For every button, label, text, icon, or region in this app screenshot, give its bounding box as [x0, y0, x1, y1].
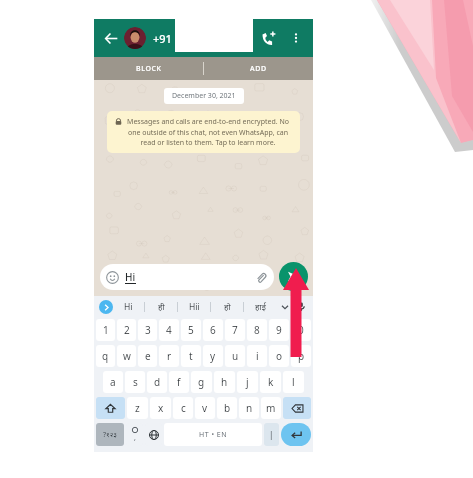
- button[interactable]: ADD: [204, 57, 313, 80]
- button[interactable]: Backspace: [283, 397, 311, 419]
- button[interactable]: e: [138, 345, 157, 367]
- button[interactable]: ?१२३: [96, 423, 124, 446]
- button[interactable]: Voice input: [294, 296, 308, 317]
- button[interactable]: 4: [159, 319, 179, 341]
- staticText: x: [158, 401, 164, 415]
- button[interactable]: s: [125, 371, 145, 393]
- button[interactable]: k: [260, 371, 281, 393]
- button[interactable]: a: [103, 371, 123, 393]
- button[interactable]: Change language: [145, 423, 162, 446]
- staticText: k: [268, 375, 274, 389]
- button[interactable]: d: [147, 371, 167, 393]
- button[interactable]: ही: [145, 296, 177, 317]
- button[interactable]: More options: [285, 27, 307, 49]
- staticText: q: [102, 349, 109, 363]
- staticText: HT • EN: [199, 430, 228, 440]
- staticText: u: [232, 349, 239, 363]
- staticText: 0: [298, 323, 304, 337]
- staticText: r: [167, 349, 172, 363]
- staticText: ADD: [250, 64, 267, 74]
- staticText: हाई: [255, 301, 266, 313]
- button[interactable]: n: [239, 397, 259, 419]
- button[interactable]: 2: [117, 319, 136, 341]
- staticText: p: [298, 349, 305, 363]
- staticText: ही: [158, 301, 165, 313]
- button[interactable]: 8: [247, 319, 267, 341]
- staticText: d: [154, 375, 161, 389]
- button[interactable]: हो: [211, 296, 243, 317]
- button[interactable]: 7: [225, 319, 245, 341]
- staticText: 6: [210, 323, 216, 337]
- staticText: 8: [254, 323, 260, 337]
- button[interactable]: |: [264, 423, 279, 446]
- button[interactable]: y: [203, 345, 223, 367]
- button[interactable]: Call: [255, 25, 281, 51]
- staticText: c: [181, 401, 186, 415]
- staticText: 9: [276, 323, 282, 337]
- button[interactable]: g: [191, 371, 212, 393]
- button[interactable]: p: [291, 345, 311, 367]
- button[interactable]: m: [261, 397, 281, 419]
- staticText: ,: [134, 433, 136, 443]
- staticText: g: [198, 375, 205, 389]
- button[interactable]: c: [173, 397, 193, 419]
- button[interactable]: 9: [269, 319, 289, 341]
- staticText: 3: [145, 323, 151, 337]
- staticText: z: [135, 401, 140, 415]
- button[interactable]: h: [214, 371, 235, 393]
- staticText: BLOCK: [136, 64, 162, 74]
- button[interactable]: Emoji and comma: [126, 423, 143, 446]
- button[interactable]: x: [150, 397, 171, 419]
- staticText: i: [256, 349, 259, 363]
- button[interactable]: j: [237, 371, 258, 393]
- staticText: Hi: [124, 301, 133, 313]
- staticText: 5: [188, 323, 194, 337]
- staticText: m: [266, 401, 276, 415]
- button[interactable]: l: [283, 371, 304, 393]
- staticText: j: [246, 375, 249, 389]
- button[interactable]: v: [195, 397, 215, 419]
- staticText: b: [224, 401, 231, 415]
- button[interactable]: w: [117, 345, 136, 367]
- button[interactable]: 5: [181, 319, 201, 341]
- button[interactable]: f: [169, 371, 189, 393]
- button[interactable]: u: [225, 345, 245, 367]
- staticText: +91: [153, 31, 172, 46]
- button[interactable]: Hi: [113, 296, 144, 317]
- button[interactable]: Hi: [100, 264, 274, 290]
- button[interactable]: t: [181, 345, 201, 367]
- staticText: Hi: [125, 270, 136, 284]
- button[interactable]: 6: [203, 319, 223, 341]
- staticText: Messages and calls are end-to-end encryp…: [124, 117, 292, 147]
- button[interactable]: b: [217, 397, 237, 419]
- button[interactable]: Back: [100, 27, 122, 49]
- button[interactable]: Expand suggestions: [99, 300, 113, 314]
- button[interactable]: हाई: [244, 296, 276, 317]
- button[interactable]: More suggestions: [276, 296, 294, 317]
- staticText: o: [276, 349, 283, 363]
- button[interactable]: i: [247, 345, 267, 367]
- staticText: h: [221, 375, 228, 389]
- button[interactable]: HT • EN: [164, 423, 262, 446]
- button[interactable]: Attach: [253, 270, 268, 285]
- staticText: f: [177, 375, 181, 389]
- staticText: 7: [232, 323, 238, 337]
- button[interactable]: 1: [96, 319, 115, 341]
- staticText: ?१२३: [103, 430, 117, 440]
- button[interactable]: Enter: [281, 423, 311, 446]
- button[interactable]: Hii: [178, 296, 210, 317]
- staticText: v: [202, 401, 208, 415]
- staticText: a: [110, 375, 116, 389]
- button[interactable]: BLOCK: [94, 57, 203, 80]
- staticText: 2: [124, 323, 130, 337]
- button[interactable]: Shift: [96, 397, 125, 419]
- staticText: Hii: [189, 301, 200, 313]
- button[interactable]: 0: [291, 319, 311, 341]
- staticText: y: [210, 349, 216, 363]
- button[interactable]: q: [96, 345, 115, 367]
- button[interactable]: Send: [279, 262, 308, 291]
- button[interactable]: o: [269, 345, 289, 367]
- button[interactable]: 3: [138, 319, 157, 341]
- button[interactable]: z: [127, 397, 148, 419]
- button[interactable]: r: [159, 345, 179, 367]
